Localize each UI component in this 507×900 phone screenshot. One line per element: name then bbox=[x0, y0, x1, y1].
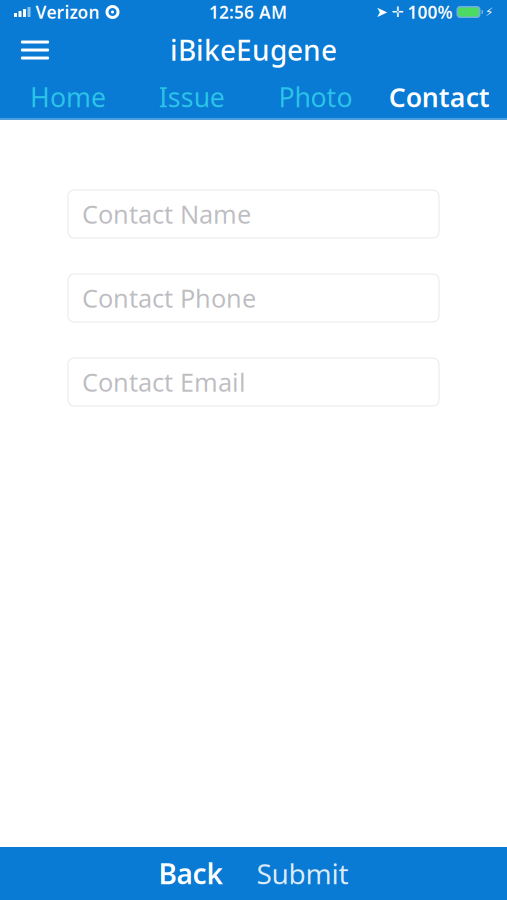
staticText: 12:56 AM bbox=[209, 0, 287, 23]
staticText: Contact Name bbox=[82, 197, 251, 231]
staticText: Verizon bbox=[35, 0, 99, 23]
staticText: Issue bbox=[159, 79, 225, 115]
button[interactable]: Submit bbox=[250, 847, 354, 900]
button[interactable]: Photo bbox=[253, 79, 377, 115]
staticText: Contact bbox=[389, 79, 490, 115]
staticText: Submit bbox=[256, 855, 348, 892]
staticText: ⚡︎ bbox=[485, 5, 493, 19]
staticText: Back bbox=[158, 855, 222, 892]
staticText: Home bbox=[30, 79, 106, 115]
staticText: 100% bbox=[407, 0, 452, 23]
button[interactable]: Home bbox=[6, 79, 130, 115]
staticText: Photo bbox=[278, 79, 352, 115]
button[interactable]: Contact bbox=[377, 79, 501, 115]
staticText: ➤ bbox=[375, 4, 387, 20]
button[interactable]: Back bbox=[152, 847, 228, 900]
button[interactable]: Issue bbox=[130, 79, 254, 115]
staticText: Contact Email bbox=[82, 365, 246, 399]
button[interactable]: Menu bbox=[10, 28, 60, 72]
staticText: Contact Phone bbox=[82, 281, 256, 315]
staticText: iBikeEugene bbox=[170, 31, 337, 69]
staticText: ✛ bbox=[391, 4, 403, 20]
